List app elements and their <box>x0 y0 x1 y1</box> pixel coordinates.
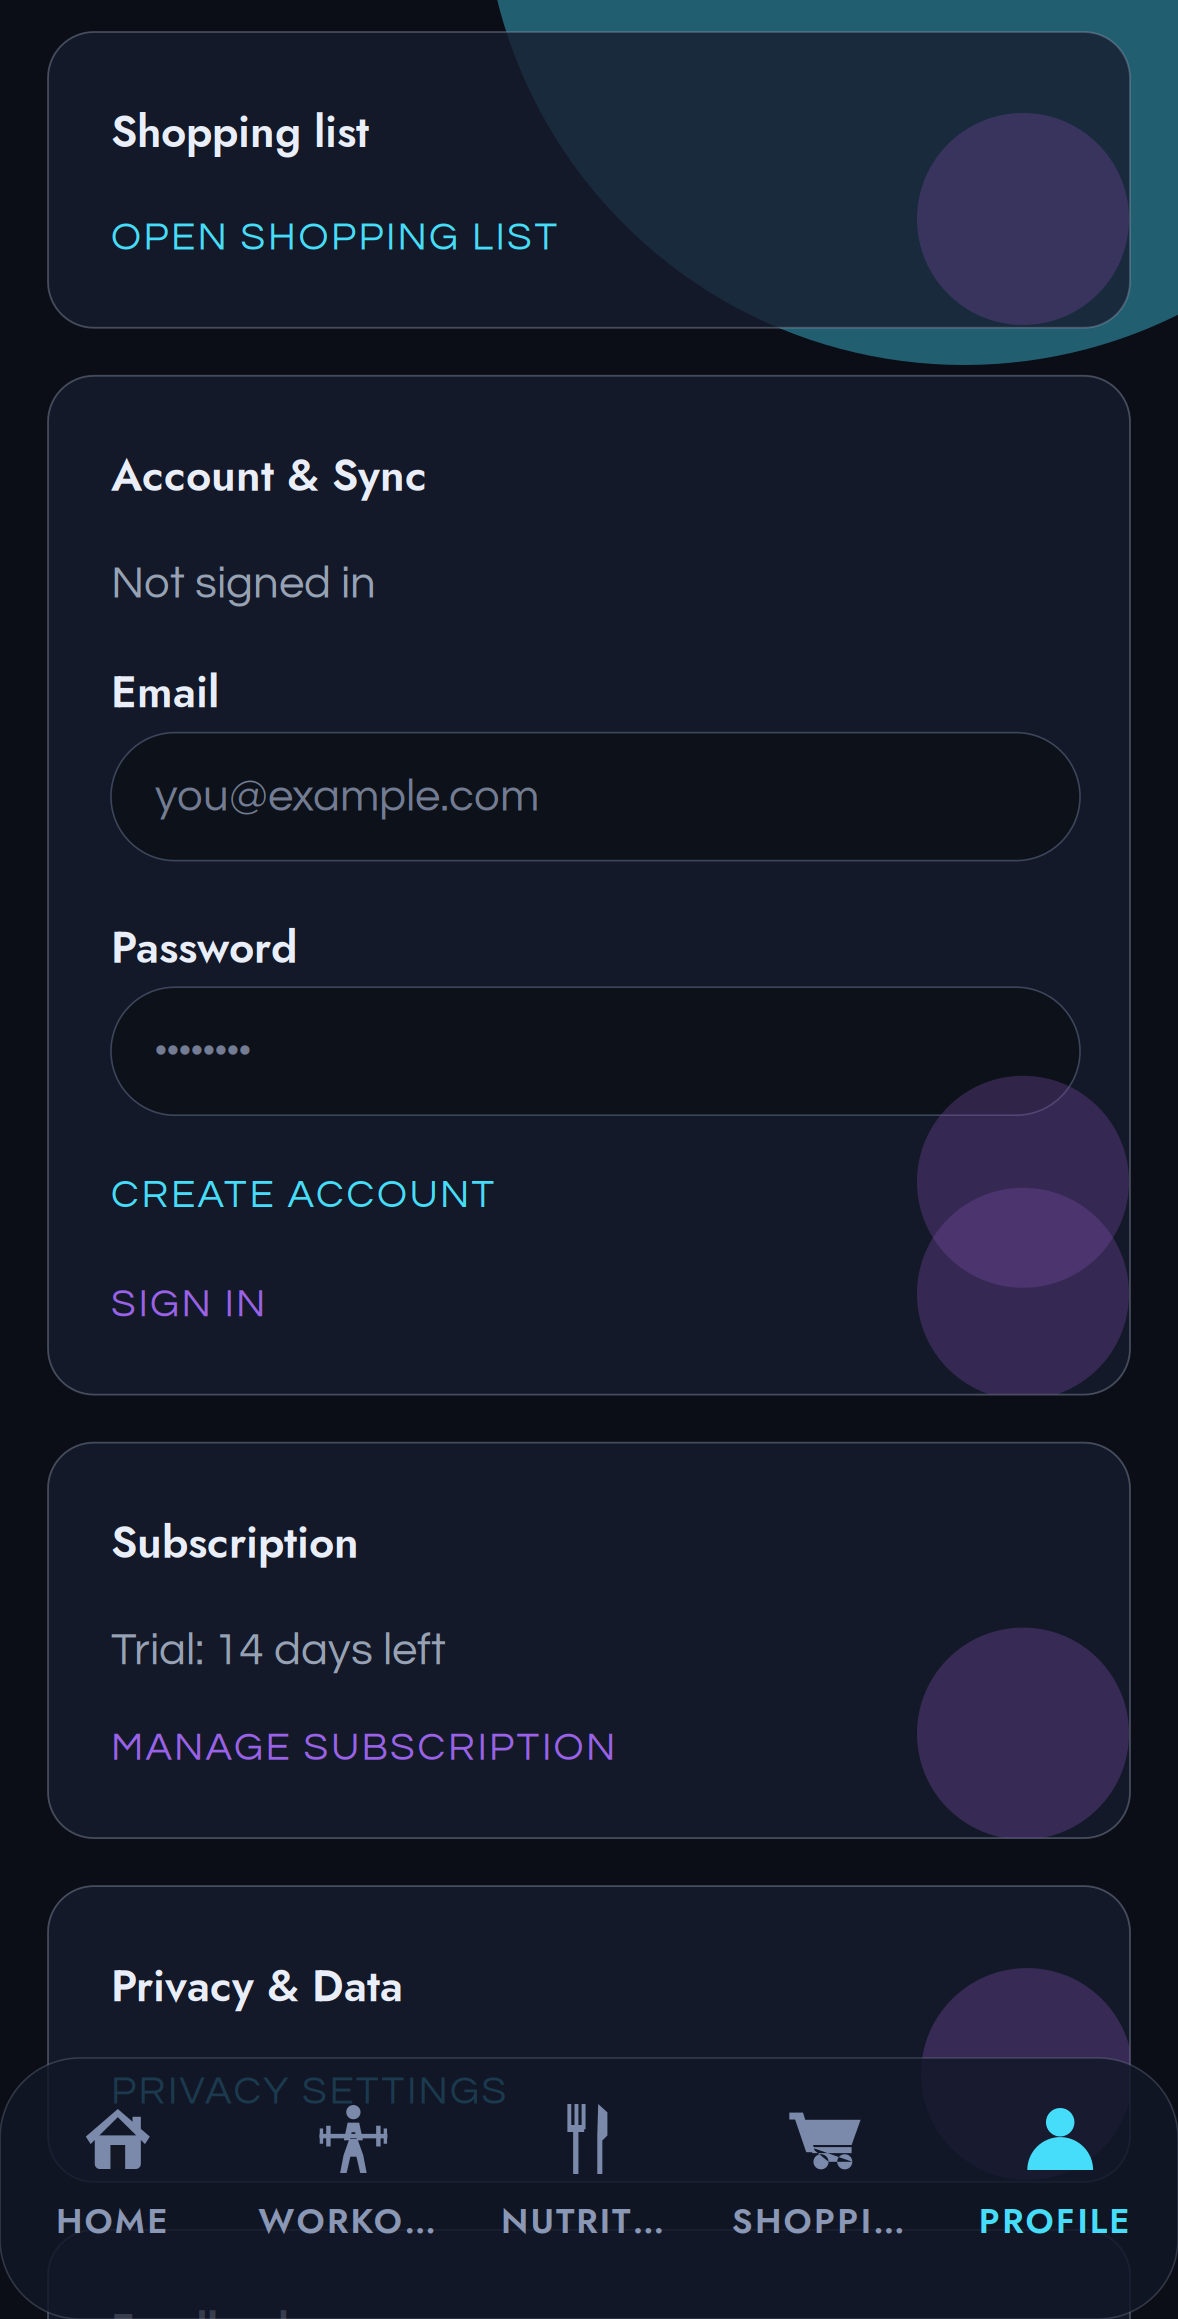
staticText: SHOPPI… <box>732 2196 917 2246</box>
staticText: you@example.com <box>155 773 539 820</box>
staticText: Subscription <box>111 1511 359 1574</box>
button[interactable]: OPEN SHOPPING LIST <box>111 217 1080 258</box>
staticText: Feedback <box>111 2298 301 2319</box>
button[interactable]: SHOPPI… <box>707 2106 942 2246</box>
button[interactable]: HOME <box>0 2106 236 2246</box>
button[interactable]: MANAGE SUBSCRIPTION <box>111 1727 1080 1768</box>
button[interactable]: PRIVACY SETTINGS <box>111 2071 1080 2112</box>
staticText: CREATE ACCOUNT <box>111 1174 494 1215</box>
button[interactable]: CREATE ACCOUNT <box>111 1174 1080 1215</box>
staticText: Trial: 14 days left <box>111 1627 446 1674</box>
staticText: HOME <box>56 2196 180 2246</box>
staticText: OPEN SHOPPING LIST <box>111 217 557 258</box>
button[interactable]: WORKO… <box>236 2106 471 2246</box>
staticText: PRIVACY SETTINGS <box>111 2071 506 2112</box>
staticText: Password <box>111 916 297 979</box>
staticText: NUTRIT… <box>501 2196 677 2246</box>
staticText: Not signed in <box>111 560 376 607</box>
staticText: Privacy & Data <box>111 1954 403 2018</box>
button[interactable]: SIGN IN <box>111 1283 1080 1325</box>
staticText: Email <box>111 660 219 724</box>
staticText: SIGN IN <box>111 1283 265 1325</box>
staticText: •••••••• <box>155 1033 251 1069</box>
staticText: WORKO… <box>258 2196 449 2246</box>
staticText: Account & Sync <box>111 444 427 507</box>
staticText: PROFILE <box>979 2196 1142 2246</box>
staticText: MANAGE SUBSCRIPTION <box>111 1727 615 1768</box>
staticText: Shopping list <box>111 100 369 164</box>
button[interactable]: NUTRIT… <box>471 2106 707 2246</box>
button[interactable]: PROFILE <box>942 2106 1178 2246</box>
